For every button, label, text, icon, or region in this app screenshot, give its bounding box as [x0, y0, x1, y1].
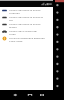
button[interactable]: Back [9, 90, 21, 100]
button[interactable]: Home [24, 90, 36, 100]
button[interactable]: Calcolo del la massa del [0, 28, 53, 35]
button[interactable]: Recent apps [36, 90, 48, 100]
staticText: IVR [9, 18, 13, 21]
staticText: Calcolo del indice di massa al [9, 15, 44, 18]
button[interactable]: Controllo pagamenti effettuati [0, 35, 53, 42]
staticText: Calcolo del indice di massa [9, 8, 41, 11]
staticText: Calcolo del la massa del [9, 29, 37, 32]
button[interactable]: Calcolo del indice di massa [0, 7, 53, 14]
staticText: a fine mese [9, 39, 23, 42]
staticText: corporea [9, 11, 20, 14]
staticText: Calcolo del indice di massa [9, 22, 41, 25]
button[interactable]: Calcolo del indice di massa [0, 21, 53, 28]
button[interactable]: Calcolo del indice di massa al [0, 14, 53, 21]
staticText: corpo [9, 32, 16, 35]
staticText: grassa [9, 25, 17, 28]
staticText: Controllo pagamenti effettuati [9, 36, 45, 39]
